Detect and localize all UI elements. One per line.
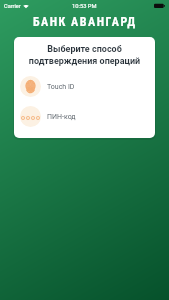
button[interactable]: Touch ID	[14, 76, 155, 97]
staticText: Carrier	[4, 3, 21, 10]
staticText: 10:53 PM	[72, 3, 97, 10]
staticText: Выберите способ подтверждения операций	[14, 44, 155, 66]
button[interactable]: ПИН-код	[14, 106, 155, 127]
staticText: Touch ID	[47, 83, 75, 91]
staticText: БАНК АВАНГАРД	[33, 15, 137, 29]
staticText: ПИН-код	[47, 113, 76, 121]
